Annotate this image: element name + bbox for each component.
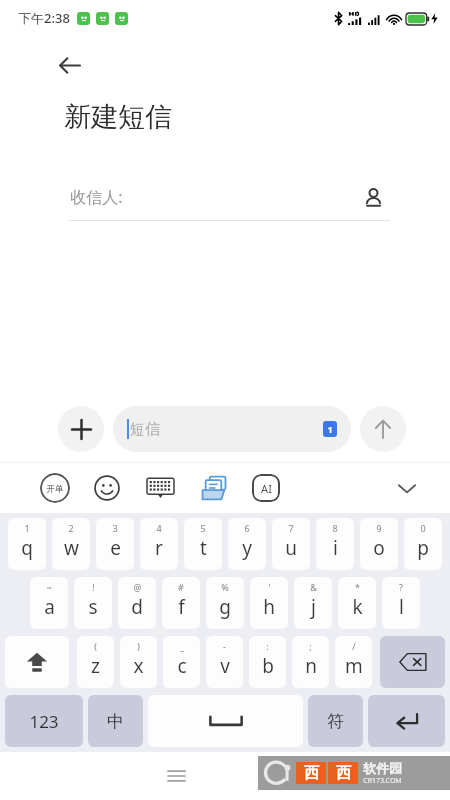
button[interactable]: ; [292, 636, 329, 688]
staticText: h [263, 594, 275, 620]
staticText: a [44, 594, 55, 620]
staticText: ~ [46, 581, 52, 593]
staticText: n [305, 653, 317, 679]
staticText: & [310, 581, 317, 593]
staticText: r [155, 535, 163, 561]
button[interactable]: - [206, 636, 243, 688]
staticText: ( [94, 640, 97, 652]
staticText: x [133, 653, 144, 679]
staticText: ! [92, 581, 95, 593]
button[interactable]: ' [250, 577, 288, 629]
staticText: ; [309, 640, 312, 652]
staticText: 符 [327, 711, 344, 732]
button[interactable]: 中 [88, 695, 143, 747]
button[interactable]: * [338, 577, 376, 629]
staticText: z [91, 653, 100, 679]
staticText: - [223, 640, 226, 652]
staticText: 收信人: [70, 186, 123, 208]
button[interactable]: Send [360, 406, 406, 452]
button[interactable]: 1 [8, 518, 46, 570]
staticText: 0 [420, 522, 426, 534]
button[interactable]: AI [252, 474, 280, 502]
staticText: s [88, 594, 98, 620]
button[interactable]: ) [120, 636, 157, 688]
staticText: 6 [244, 522, 250, 534]
button[interactable]: Keyboard layout [144, 472, 176, 504]
button[interactable]: 符 [308, 695, 363, 747]
staticText: 新建短信 [64, 100, 172, 134]
button[interactable]: 3 [96, 518, 134, 570]
staticText: 短信 [130, 420, 160, 439]
staticText: l [399, 594, 404, 620]
staticText: * [355, 581, 360, 593]
staticText: 123 [29, 710, 59, 733]
staticText: 9 [376, 522, 382, 534]
button[interactable]: Enter [368, 695, 445, 747]
button[interactable]: 123 [5, 695, 83, 747]
staticText: p [417, 535, 429, 561]
staticText: 西 [336, 764, 351, 783]
staticText: c [177, 653, 187, 679]
button[interactable]: 7 [272, 518, 310, 570]
button[interactable]: Clipboard [198, 472, 230, 504]
button[interactable]: # [162, 577, 200, 629]
staticText: e [110, 535, 121, 561]
button[interactable]: 5 [184, 518, 222, 570]
staticText: 1 [24, 522, 30, 534]
staticText: _ [180, 640, 184, 652]
button[interactable]: Emoji [92, 473, 122, 503]
staticText: CR173.COM [363, 776, 402, 786]
staticText: j [311, 594, 316, 620]
button[interactable]: : [249, 636, 286, 688]
staticText: ) [137, 640, 140, 652]
button[interactable]: Home [254, 756, 294, 796]
staticText: 7 [288, 522, 294, 534]
button[interactable]: ? [382, 577, 420, 629]
button[interactable]: 4 [140, 518, 178, 570]
staticText: 开单 [46, 483, 64, 494]
staticText: f [178, 594, 185, 620]
staticText: 2 [68, 522, 74, 534]
staticText: 中 [107, 711, 124, 732]
button[interactable]: ~ [30, 577, 68, 629]
staticText: 西 [304, 764, 319, 783]
button[interactable]: / [335, 636, 372, 688]
button[interactable]: Add attachment [58, 406, 104, 452]
staticText: 4 [156, 522, 162, 534]
button[interactable]: 6 [228, 518, 266, 570]
button[interactable]: Hide keyboard [390, 471, 424, 505]
staticText: 8 [332, 522, 338, 534]
button[interactable]: 2 [52, 518, 90, 570]
staticText: 1 [327, 423, 333, 435]
button[interactable]: 8 [316, 518, 354, 570]
staticText: o [373, 535, 385, 561]
staticText: % [221, 581, 229, 593]
button[interactable]: % [206, 577, 244, 629]
staticText: u [285, 535, 297, 561]
button[interactable]: Space [148, 695, 303, 747]
staticText: / [352, 640, 356, 652]
staticText: m [345, 653, 363, 679]
button[interactable]: _ [163, 636, 200, 688]
other: Choose contact [358, 182, 388, 212]
staticText: k [352, 594, 363, 620]
button[interactable]: Recent apps [156, 756, 196, 796]
staticText: d [131, 594, 143, 620]
button[interactable]: & [294, 577, 332, 629]
button[interactable]: ! [74, 577, 112, 629]
staticText: i [333, 535, 338, 561]
staticText: g [219, 594, 231, 620]
button[interactable]: 短信 [127, 406, 337, 452]
button[interactable]: 9 [360, 518, 398, 570]
button[interactable]: Backspace [380, 636, 445, 688]
button[interactable]: 开单 [40, 473, 70, 503]
staticText: v [220, 653, 230, 679]
staticText: 3 [112, 522, 118, 534]
button[interactable]: ( [77, 636, 114, 688]
button[interactable]: 0 [404, 518, 442, 570]
staticText: q [21, 535, 33, 561]
button[interactable]: @ [118, 577, 156, 629]
button[interactable]: 收信人: [70, 182, 388, 212]
button[interactable]: Back [52, 48, 86, 82]
button[interactable]: Shift [5, 636, 69, 688]
